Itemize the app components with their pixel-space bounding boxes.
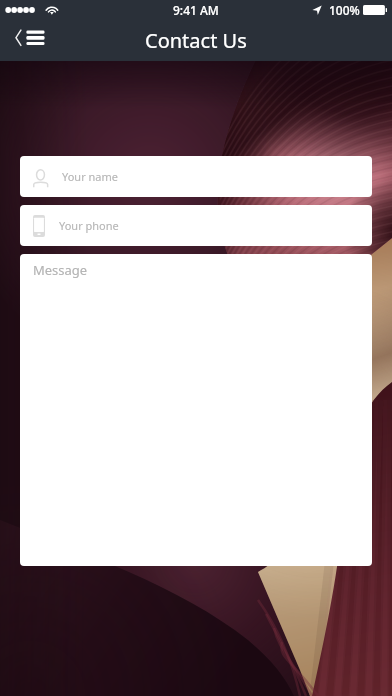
staticText: Your phone <box>59 218 119 233</box>
staticText: 100% <box>329 2 360 18</box>
button[interactable]: Open navigation menu <box>10 24 50 58</box>
staticText: Message <box>33 261 88 279</box>
button[interactable]: Your phone <box>20 205 372 246</box>
button[interactable]: Your name <box>20 156 372 197</box>
staticText: 9:41 AM <box>173 2 219 18</box>
button[interactable]: Message <box>20 254 372 566</box>
staticText: Contact Us <box>145 27 247 54</box>
staticText: Your name <box>62 169 118 184</box>
